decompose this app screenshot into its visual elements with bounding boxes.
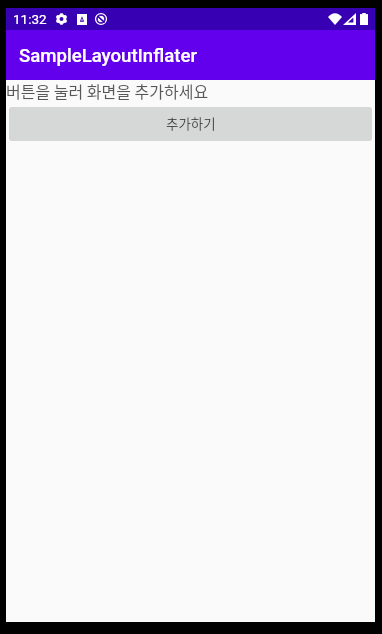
staticText: 버튼을 눌러 화면을 추가하세요 — [6, 79, 209, 102]
button[interactable]: 추가하기 — [9, 107, 372, 141]
staticText: 추가하기 — [166, 113, 216, 133]
staticText: 11:32 — [13, 11, 47, 27]
staticText: SampleLayoutInflater — [19, 45, 197, 67]
